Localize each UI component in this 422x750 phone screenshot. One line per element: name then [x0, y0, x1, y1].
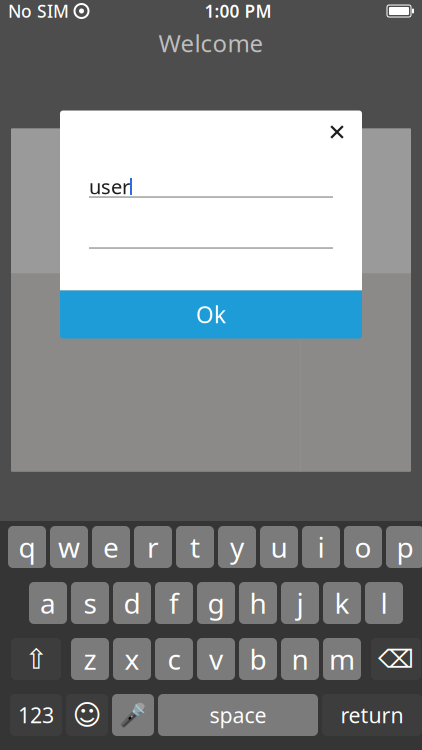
staticText: v [209, 640, 223, 678]
staticText: ☺ [72, 699, 101, 731]
button[interactable]: a [29, 582, 67, 624]
button[interactable]: y [218, 526, 256, 568]
staticText: 1:00 PM [204, 0, 271, 22]
button[interactable]: n [281, 638, 319, 680]
staticText: w [58, 528, 80, 566]
button[interactable]: b [239, 638, 277, 680]
staticText: i [317, 528, 324, 566]
staticText: t [190, 528, 200, 566]
button[interactable]: Dictation [112, 694, 154, 736]
staticText: q [18, 528, 35, 566]
button[interactable]: Shift [11, 638, 61, 680]
button[interactable]: z [71, 638, 109, 680]
staticText: m [329, 640, 355, 678]
button[interactable]: o [344, 526, 382, 568]
staticText: z [83, 640, 96, 678]
button[interactable]: Ok [60, 290, 362, 338]
button[interactable]: e [92, 526, 130, 568]
button[interactable]: Emoji [66, 694, 108, 736]
staticText: space [209, 701, 266, 729]
staticText: return [340, 701, 403, 729]
button[interactable]: k [323, 582, 361, 624]
button[interactable]: t [176, 526, 214, 568]
button[interactable]: g [197, 582, 235, 624]
button[interactable]: return [322, 694, 422, 736]
staticText: n [291, 640, 308, 678]
button[interactable]: s [71, 582, 109, 624]
staticText: j [296, 584, 303, 622]
button[interactable]: w [50, 526, 88, 568]
button[interactable]: u [260, 526, 298, 568]
staticText: x [124, 640, 139, 678]
button[interactable]: m [323, 638, 361, 680]
button[interactable]: space [158, 694, 318, 736]
button[interactable]: Close [320, 116, 354, 148]
staticText: ⇧ [24, 643, 47, 675]
button[interactable]: j [281, 582, 319, 624]
staticText: r [147, 528, 159, 566]
staticText: k [334, 584, 349, 622]
staticText: ✕ [327, 120, 346, 145]
staticText: o [354, 528, 371, 566]
staticText: y [230, 528, 244, 566]
staticText: Welcome [158, 27, 263, 59]
button[interactable]: v [197, 638, 235, 680]
button[interactable]: c [155, 638, 193, 680]
staticText: user [89, 173, 130, 200]
staticText: p [396, 528, 413, 566]
staticText: h [249, 584, 266, 622]
button[interactable]: d [113, 582, 151, 624]
staticText: d [123, 584, 140, 622]
button[interactable]: q [8, 526, 46, 568]
staticText: Ok [196, 299, 226, 329]
staticText: 123 [18, 701, 54, 729]
button[interactable]: l [365, 582, 403, 624]
button[interactable]: r [134, 526, 172, 568]
staticText: a [40, 584, 56, 622]
button[interactable]: x [113, 638, 151, 680]
staticText: l [380, 584, 387, 622]
staticText: b [249, 640, 266, 678]
staticText: g [207, 584, 224, 622]
staticText: c [167, 640, 180, 678]
staticText: 🎤 [119, 702, 147, 728]
button[interactable]: h [239, 582, 277, 624]
button[interactable]: Delete [371, 638, 421, 680]
button[interactable]: i [302, 526, 340, 568]
staticText: ⌫ [378, 645, 414, 673]
button[interactable]: f [155, 582, 193, 624]
staticText: u [270, 528, 287, 566]
button[interactable]: p [386, 526, 422, 568]
staticText: f [169, 584, 179, 622]
staticText: No SIM [8, 0, 69, 22]
button[interactable]: 123 [10, 694, 62, 736]
staticText: s [83, 584, 96, 622]
staticText: e [103, 528, 119, 566]
